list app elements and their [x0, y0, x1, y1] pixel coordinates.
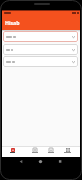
button[interactable] [3, 56, 78, 67]
button[interactable] [3, 44, 78, 55]
button[interactable] [27, 147, 42, 157]
button[interactable] [43, 147, 58, 157]
button[interactable] [60, 147, 75, 157]
staticText: Hisab [5, 19, 20, 26]
button[interactable] [3, 31, 78, 42]
button[interactable] [5, 147, 20, 157]
